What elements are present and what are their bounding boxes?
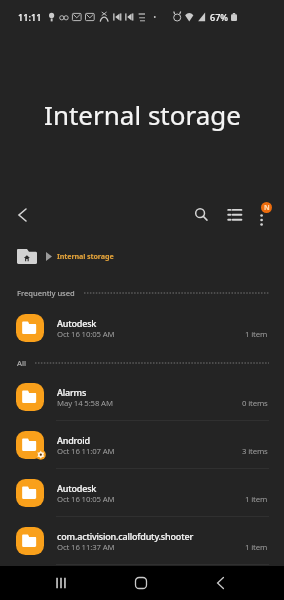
button[interactable]: Recent apps	[45, 567, 77, 599]
staticText: com.activision.callofduty.shooter	[57, 530, 194, 542]
staticText: 1 item	[245, 329, 268, 340]
staticText: May 14 5:58 AM	[57, 398, 113, 409]
button[interactable]: More options	[248, 199, 280, 231]
staticText: 3 items	[242, 446, 268, 457]
button[interactable]: Search	[184, 199, 216, 231]
staticText: Oct 16 10:05 AM	[57, 494, 115, 505]
button[interactable]: Android	[0, 421, 284, 469]
button[interactable]: Navigate up	[6, 199, 38, 231]
staticText: Oct 16 10:05 AM	[57, 329, 115, 340]
staticText: Autodesk	[57, 317, 97, 329]
staticText: All	[17, 358, 26, 368]
staticText: 11:11	[18, 11, 42, 23]
button[interactable]: Back	[204, 567, 236, 599]
button[interactable]: Change view	[218, 199, 250, 231]
staticText: Oct 16 11:37 AM	[57, 542, 115, 553]
staticText: Autodesk	[57, 482, 97, 494]
button[interactable]: Home	[125, 567, 157, 599]
staticText: Internal storage	[44, 97, 241, 132]
button[interactable]: Internal storage	[57, 251, 114, 261]
staticText: 0 items	[242, 398, 268, 409]
staticText: Frequently used	[17, 288, 75, 298]
staticText: 1 item	[245, 542, 268, 553]
staticText: Android	[57, 434, 90, 446]
button[interactable]: com.activision.callofduty.shooter	[0, 517, 284, 565]
button[interactable]: Autodesk	[0, 304, 284, 352]
staticText: N	[264, 203, 270, 213]
button[interactable]: Home folder	[17, 249, 37, 264]
button[interactable]: Autodesk	[0, 469, 284, 517]
staticText: 67%	[210, 11, 228, 23]
staticText: 1 item	[245, 494, 268, 505]
staticText: Alarms	[57, 386, 87, 398]
staticText: Oct 16 11:07 AM	[57, 446, 115, 457]
button[interactable]: Alarms	[0, 373, 284, 421]
staticText: Internal storage	[57, 251, 114, 261]
